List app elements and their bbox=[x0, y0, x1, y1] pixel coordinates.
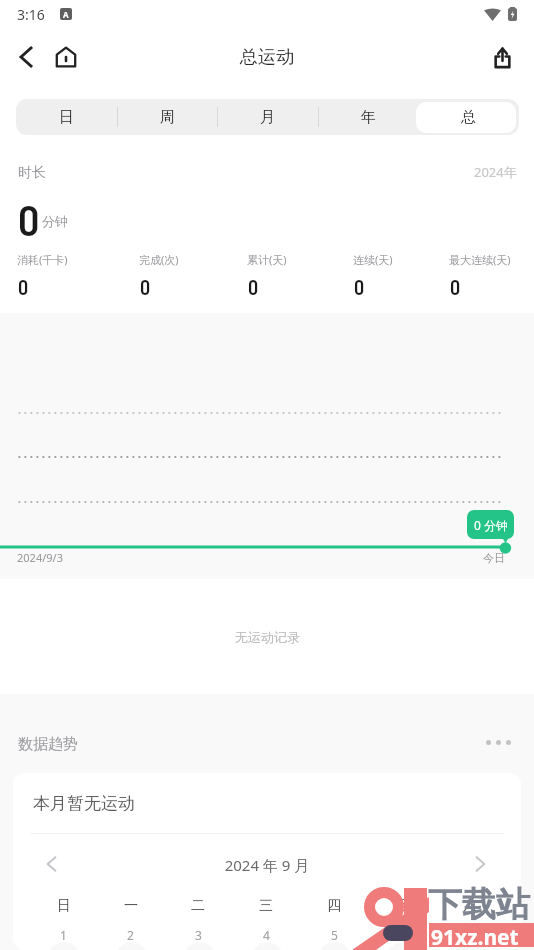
staticText: 总运动 bbox=[240, 46, 294, 69]
staticText: 累计(天) bbox=[247, 252, 287, 267]
staticText: 三 bbox=[259, 897, 273, 915]
staticText: 91xz.net bbox=[431, 923, 519, 947]
button[interactable]: 总 bbox=[418, 99, 519, 135]
staticText: 日 bbox=[57, 897, 71, 915]
staticText: 4 bbox=[263, 927, 270, 943]
staticText: 今日 bbox=[483, 551, 505, 565]
staticText: 0 分钟 bbox=[474, 517, 508, 533]
staticText: 2024 年 9 月 bbox=[13, 855, 521, 875]
staticText: 四 bbox=[327, 897, 341, 915]
button[interactable]: Back bbox=[6, 37, 46, 77]
staticText: 本月暂无运动 bbox=[33, 793, 135, 814]
button[interactable]: More options bbox=[478, 724, 518, 760]
button[interactable]: Home bbox=[46, 37, 86, 77]
staticText: 完成(次) bbox=[139, 252, 179, 267]
button[interactable]: Previous month bbox=[34, 847, 68, 881]
button[interactable]: 年 bbox=[318, 99, 419, 135]
staticText: 一 bbox=[124, 897, 138, 915]
staticText: 1 bbox=[60, 927, 67, 943]
button[interactable]: Next month bbox=[463, 847, 497, 881]
staticText: 周 bbox=[160, 108, 175, 127]
button[interactable]: 周 bbox=[117, 99, 218, 135]
staticText: 0 bbox=[354, 275, 365, 299]
staticText: 年 bbox=[361, 108, 376, 127]
staticText: 0 bbox=[18, 275, 29, 299]
staticText: 五 bbox=[395, 897, 409, 915]
staticText: 2 bbox=[127, 927, 134, 943]
staticText: 分钟 bbox=[42, 213, 68, 229]
staticText: 0 bbox=[450, 275, 461, 299]
staticText: 5 bbox=[331, 927, 338, 943]
staticText: 时长 bbox=[18, 164, 46, 182]
staticText: 3:16 bbox=[17, 5, 45, 24]
staticText: 二 bbox=[191, 897, 205, 915]
staticText: A bbox=[63, 9, 69, 20]
staticText: 无运动记录 bbox=[235, 629, 300, 645]
staticText: 2024年 bbox=[474, 163, 517, 181]
staticText: 数据趋势 bbox=[18, 735, 78, 754]
staticText: 下载站 bbox=[428, 883, 530, 926]
staticText: 0 bbox=[140, 275, 151, 299]
staticText: 六 bbox=[463, 897, 477, 915]
staticText: 日 bbox=[59, 108, 74, 127]
staticText: 2024/9/3 bbox=[17, 550, 63, 565]
staticText: 3 bbox=[195, 927, 202, 943]
button[interactable]: 日 bbox=[16, 99, 117, 135]
staticText: 连续(天) bbox=[353, 252, 393, 267]
staticText: 6 bbox=[399, 927, 406, 943]
staticText: 7 bbox=[467, 927, 474, 943]
staticText: 最大连续(天) bbox=[449, 252, 511, 267]
staticText: 总 bbox=[461, 108, 476, 127]
button[interactable]: 月 bbox=[217, 99, 318, 135]
staticText: 0 bbox=[248, 275, 259, 299]
staticText: 消耗(千卡) bbox=[17, 252, 68, 267]
staticText: 月 bbox=[260, 108, 275, 127]
button[interactable]: Share bbox=[482, 37, 522, 77]
staticText: 0 bbox=[18, 194, 40, 244]
